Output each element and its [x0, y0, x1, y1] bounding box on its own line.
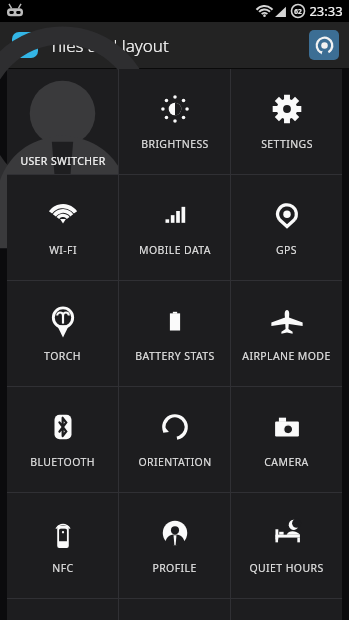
staticText: USER SWITCHER [20, 154, 106, 168]
button[interactable]: BLUETOOTH [7, 387, 118, 492]
staticText: Tiles and layout [49, 34, 169, 57]
staticText: BLUETOOTH [30, 455, 95, 469]
staticText: BRIGHTNESS [141, 137, 209, 151]
staticText: SETTINGS [261, 137, 313, 151]
button[interactable]: ORIENTATION [119, 387, 230, 492]
staticText: ORIENTATION [138, 455, 212, 469]
button[interactable]: GPS [231, 175, 342, 280]
staticText: PROFILE [152, 561, 197, 575]
button[interactable]: CAMERA [231, 387, 342, 492]
staticText: AIRPLANE MODE [242, 349, 331, 363]
button[interactable]: AIRPLANE MODE [231, 281, 342, 386]
button[interactable]: SETTINGS [231, 69, 342, 174]
staticText: TORCH [44, 349, 81, 363]
staticText: 62 [294, 7, 302, 16]
button[interactable]: WI-FI [7, 175, 118, 280]
button[interactable]: USER SWITCHER [7, 69, 118, 174]
staticText: WI-FI [49, 243, 77, 257]
button[interactable]: MOBILE DATA [119, 175, 230, 280]
button[interactable]: BRIGHTNESS [119, 69, 230, 174]
button[interactable]: NFC [7, 493, 118, 598]
staticText: QUIET HOURS [249, 561, 324, 575]
button[interactable]: QUIET HOURS [231, 493, 342, 598]
staticText: NFC [52, 561, 74, 575]
button[interactable]: Reset tiles [309, 30, 339, 60]
button[interactable]: TORCH [7, 281, 118, 386]
staticText: GPS [276, 243, 297, 257]
button[interactable]: PROFILE [119, 493, 230, 598]
button[interactable]: BATTERY STATS [119, 281, 230, 386]
staticText: CAMERA [264, 455, 309, 469]
staticText: BATTERY STATS [135, 349, 215, 363]
staticText: 23:33 [309, 2, 343, 20]
staticText: MOBILE DATA [139, 243, 211, 257]
